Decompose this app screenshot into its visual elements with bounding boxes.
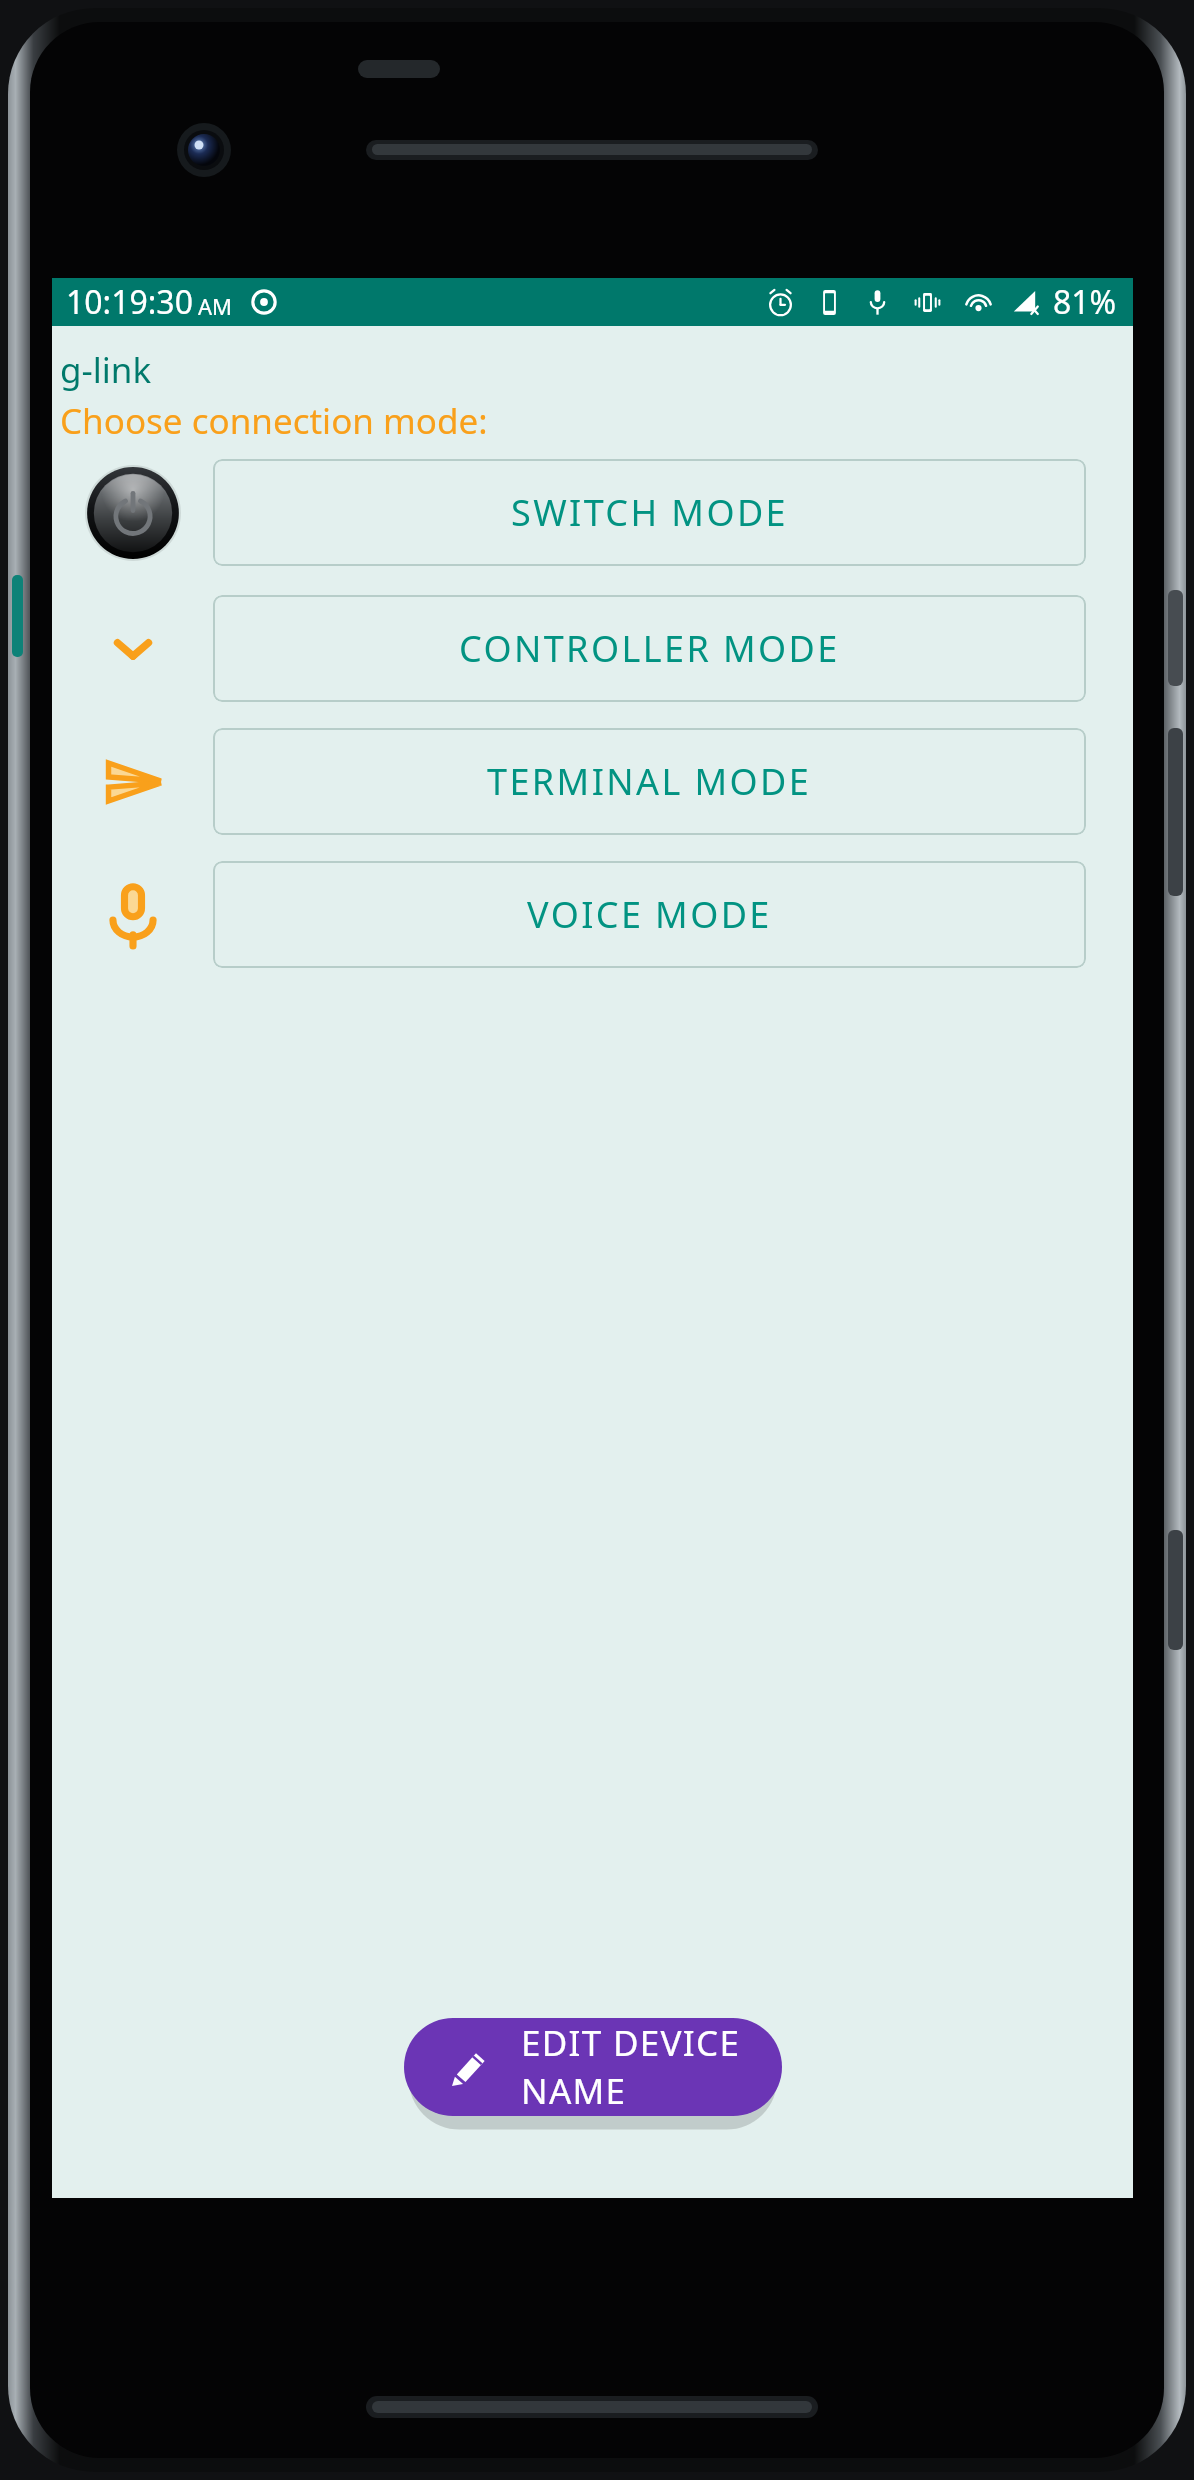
button[interactable]: CONTROLLER MODE [213,595,1086,702]
staticText: AM [198,291,233,321]
button[interactable]: Power [85,465,181,561]
staticText: 10:19:30 [66,280,193,324]
button[interactable]: Controller mode [102,618,164,680]
button[interactable]: EDIT DEVICE NAME [404,2018,782,2116]
button[interactable]: Terminal mode [99,748,167,816]
staticText: 81% [1053,280,1117,324]
staticText: VOICE MODE [527,890,772,939]
staticText: Choose connection mode: [60,397,488,445]
staticText: g-link [60,346,152,394]
staticText: TERMINAL MODE [487,757,812,806]
staticText: SWITCH MODE [511,488,788,537]
button[interactable]: VOICE MODE [213,861,1086,968]
staticText: CONTROLLER MODE [459,624,840,673]
button[interactable]: SWITCH MODE [213,459,1086,566]
staticText: EDIT DEVICE NAME [521,2019,744,2115]
button[interactable]: Voice mode [99,881,167,949]
button[interactable]: TERMINAL MODE [213,728,1086,835]
